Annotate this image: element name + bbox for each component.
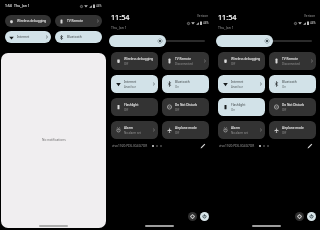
staticText: Anasfour	[124, 85, 136, 89]
staticText: On	[282, 85, 286, 89]
staticText: 44%	[310, 21, 316, 25]
button[interactable]: TV Remote	[55, 15, 102, 27]
staticText: On	[231, 108, 235, 112]
staticText: Do Not Disturb	[175, 103, 198, 107]
staticText: Flashlight	[124, 103, 139, 107]
button[interactable]: Do Not Disturb	[269, 98, 316, 116]
staticText: Thu, Jan 1	[218, 25, 234, 30]
staticText: vivo1920:PIXL3G4G7OR	[112, 144, 148, 148]
staticText: No alarm set	[124, 131, 141, 135]
staticText: Off	[231, 62, 236, 66]
staticText: Airplane mode	[282, 126, 304, 130]
staticText: 44%	[96, 4, 102, 8]
staticText: Alarm	[124, 126, 133, 130]
button[interactable]: Internet	[111, 75, 158, 93]
staticText: Off	[175, 131, 180, 135]
staticText: Off	[282, 131, 287, 135]
staticText: Thu, Jan 1	[111, 25, 127, 30]
staticText: Disconnected	[282, 62, 300, 66]
button[interactable]: Power	[200, 212, 209, 221]
staticText: Wireless debugging	[124, 57, 154, 61]
staticText: Thu, Jan 1	[14, 3, 30, 8]
staticText: Anasfour	[231, 85, 243, 89]
button[interactable]: Do Not Disturb	[162, 98, 209, 116]
staticText: TV Remote	[282, 57, 298, 61]
button[interactable]: Wireless debugging	[111, 52, 158, 70]
staticText: Alarm	[231, 126, 240, 130]
staticText: Off	[124, 62, 129, 66]
staticText: TV Remote	[67, 19, 96, 23]
button[interactable]: TV Remote	[162, 52, 209, 70]
staticText: Internet	[17, 35, 45, 39]
button[interactable]: Flashlight	[111, 98, 158, 116]
staticText: Internet	[124, 80, 137, 84]
button[interactable]: Alarm	[111, 121, 158, 139]
staticText: Off	[124, 108, 129, 112]
button[interactable]: Settings	[295, 212, 304, 221]
staticText: vivo1920:PIXL3G4G7OR	[219, 144, 255, 148]
staticText: Verizon	[197, 14, 209, 18]
button[interactable]: Edit tiles	[306, 142, 314, 150]
button[interactable]: TV Remote	[269, 52, 316, 70]
button[interactable]: Bluetooth	[269, 75, 316, 93]
button[interactable]: Alarm	[218, 121, 265, 139]
button[interactable]: Brightness	[109, 35, 166, 47]
button[interactable]: Settings	[188, 212, 197, 221]
staticText: Bluetooth	[67, 35, 100, 39]
button[interactable]: Wireless debugging	[5, 15, 51, 27]
button[interactable]: Airplane mode	[162, 121, 209, 139]
button[interactable]: Flashlight	[218, 98, 265, 116]
button[interactable]: Bluetooth	[162, 75, 209, 93]
button[interactable]: Airplane mode	[269, 121, 316, 139]
staticText: Bluetooth	[175, 80, 190, 84]
staticText: Bluetooth	[282, 80, 297, 84]
staticText: On	[175, 85, 179, 89]
staticText: 11:54	[218, 12, 237, 22]
staticText: TV Remote	[175, 57, 191, 61]
staticText: Wireless debugging	[17, 19, 49, 23]
staticText: Internet	[231, 80, 244, 84]
button[interactable]: Internet	[5, 31, 51, 43]
staticText: 11:54	[111, 12, 130, 22]
staticText: 1:54	[5, 3, 12, 8]
staticText: No notifications	[42, 138, 66, 142]
staticText: Wireless debugging	[231, 57, 261, 61]
staticText: Disconnected	[175, 62, 193, 66]
staticText: Airplane mode	[175, 126, 197, 130]
staticText: 44%	[203, 21, 209, 25]
staticText: Do Not Disturb	[282, 103, 305, 107]
staticText: Verizon	[304, 14, 316, 18]
button[interactable]: Internet	[218, 75, 265, 93]
button[interactable]: Bluetooth	[55, 31, 102, 43]
button[interactable]: Power	[307, 212, 316, 221]
staticText: Off	[282, 108, 287, 112]
button[interactable]: Brightness	[216, 35, 273, 47]
staticText: Off	[175, 108, 180, 112]
staticText: No alarm set	[231, 131, 248, 135]
button[interactable]: Edit tiles	[199, 142, 207, 150]
staticText: Flashlight	[231, 103, 246, 107]
button[interactable]: Wireless debugging	[218, 52, 265, 70]
